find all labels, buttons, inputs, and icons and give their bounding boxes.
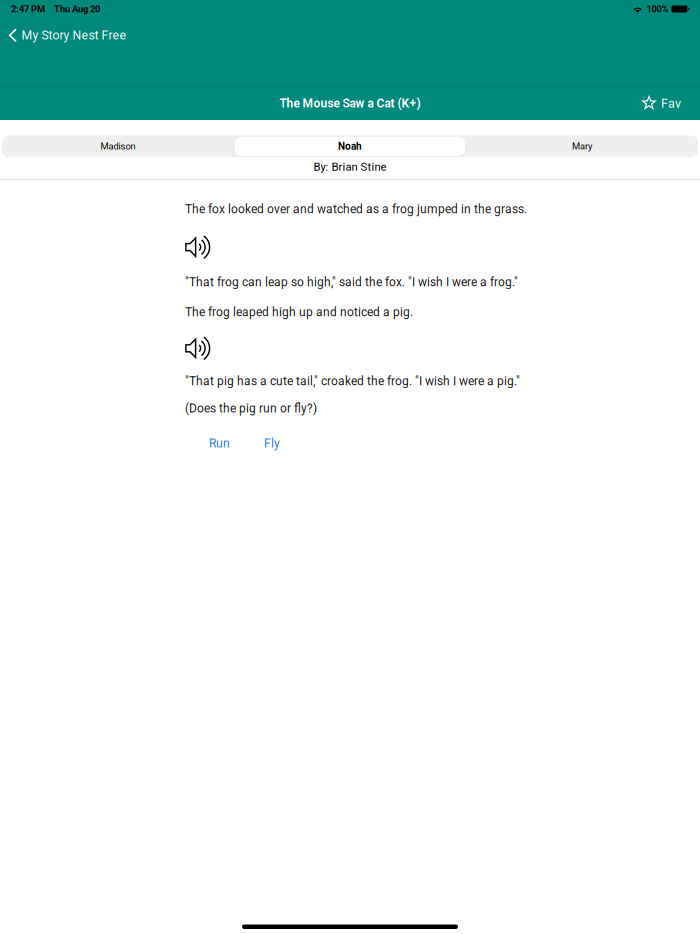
staticText: Noah bbox=[338, 140, 362, 152]
staticText: By: Brian Stine bbox=[313, 160, 386, 174]
staticText: (Does the pig run or fly?) bbox=[185, 401, 317, 415]
staticText: The fox looked over and watched as a fro… bbox=[185, 202, 527, 216]
staticText: The Mouse Saw a Cat (K+) bbox=[279, 96, 420, 111]
button[interactable]: Play sentence audio bbox=[185, 338, 214, 359]
button[interactable]: Play sentence audio bbox=[185, 237, 214, 258]
staticText: 100% bbox=[646, 3, 668, 14]
staticText: Fly bbox=[264, 436, 280, 450]
button[interactable]: Madison bbox=[2, 135, 234, 157]
staticText: Fav bbox=[661, 96, 681, 111]
staticText: 2:47 PM bbox=[11, 3, 45, 14]
staticText: "That frog can leap so high," said the f… bbox=[185, 275, 518, 289]
button[interactable]: Run bbox=[199, 432, 240, 454]
staticText: "That pig has a cute tail," croaked the … bbox=[185, 374, 520, 388]
staticText: Run bbox=[209, 436, 230, 450]
staticText: Madison bbox=[100, 141, 135, 152]
button[interactable]: Fly bbox=[254, 432, 290, 454]
button[interactable]: My Story Nest Free bbox=[0, 18, 136, 48]
staticText: Thu Aug 20 bbox=[54, 3, 100, 14]
button[interactable]: Fav bbox=[630, 89, 700, 117]
staticText: Mary bbox=[572, 141, 592, 152]
button[interactable]: Noah bbox=[234, 135, 466, 157]
staticText: My Story Nest Free bbox=[21, 28, 126, 42]
button[interactable]: Mary bbox=[466, 135, 698, 157]
staticText: The frog leaped high up and noticed a pi… bbox=[185, 305, 413, 319]
